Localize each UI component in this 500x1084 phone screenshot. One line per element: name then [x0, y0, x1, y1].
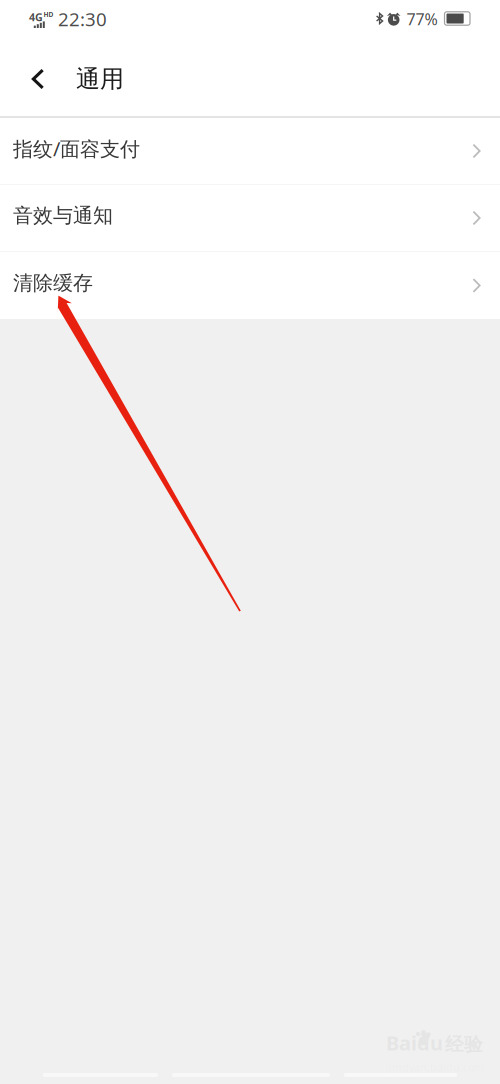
button[interactable]: 指纹/面容支付	[0, 118, 500, 184]
staticText: HD	[43, 10, 53, 19]
staticText: Baidu	[386, 1029, 443, 1056]
staticText: 清除缓存	[13, 271, 93, 295]
staticText: 经验	[445, 1033, 483, 1056]
button[interactable]: Recents	[39, 1070, 161, 1080]
button[interactable]: 音效与通知	[0, 185, 500, 251]
staticText: 音效与通知	[13, 203, 113, 228]
staticText: 4G	[29, 10, 43, 24]
staticText: 77%	[406, 8, 437, 30]
staticText: 通用	[76, 64, 124, 94]
button[interactable]: Back	[340, 1070, 460, 1080]
button[interactable]: Home	[168, 1070, 333, 1080]
staticText: 22:30	[58, 7, 107, 31]
button[interactable]: 清除缓存	[0, 252, 500, 319]
button[interactable]: Back	[16, 42, 60, 116]
staticText: 指纹/面容支付	[13, 135, 140, 162]
